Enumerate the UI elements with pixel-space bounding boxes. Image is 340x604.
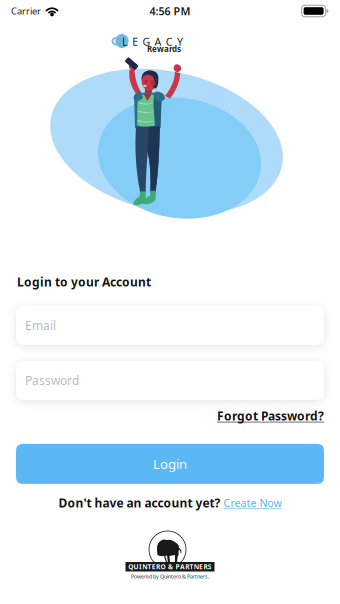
staticText: L E G A C Y bbox=[122, 34, 183, 49]
staticText: Forgot Password? bbox=[217, 408, 324, 424]
button[interactable]: Forgot Password? bbox=[217, 408, 324, 424]
staticText: QUINTERO & PARTNERS bbox=[128, 562, 212, 571]
staticText: Login to your Account bbox=[17, 274, 151, 290]
staticText: Email bbox=[25, 317, 56, 333]
staticText: 4:56 PM bbox=[149, 4, 190, 18]
staticText: Rewards bbox=[147, 43, 181, 54]
staticText: Powered by Quintero & Partners. bbox=[131, 573, 209, 580]
staticText: Password bbox=[25, 372, 79, 388]
button[interactable]: Login bbox=[16, 444, 324, 484]
staticText: Carrier bbox=[11, 5, 41, 17]
staticText: Create Now bbox=[223, 496, 281, 510]
staticText: Don't have an account yet? bbox=[58, 495, 220, 511]
staticText: Login bbox=[153, 455, 187, 473]
button[interactable]: Create Now bbox=[223, 496, 281, 510]
